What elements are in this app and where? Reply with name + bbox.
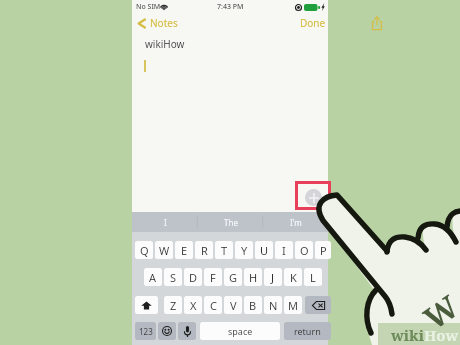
button[interactable]: Emoji xyxy=(158,322,176,340)
staticText: X xyxy=(190,298,197,313)
staticText: M xyxy=(288,298,298,313)
button[interactable]: J xyxy=(264,268,282,286)
button[interactable]: K xyxy=(284,268,302,286)
staticText: I xyxy=(164,217,167,228)
button[interactable]: R xyxy=(195,241,213,259)
button[interactable]: F xyxy=(204,268,222,286)
button[interactable]: N xyxy=(264,296,282,314)
staticText: V xyxy=(230,298,237,313)
staticText: N xyxy=(269,298,278,313)
button[interactable]: E xyxy=(175,241,193,259)
staticText: return xyxy=(294,325,321,337)
staticText: wikiHow xyxy=(145,37,185,51)
button[interactable]: I xyxy=(132,212,198,232)
button[interactable]: I xyxy=(275,241,293,259)
button[interactable]: Add attachment xyxy=(295,181,331,210)
staticText: The xyxy=(224,217,238,228)
staticText: 123 xyxy=(139,326,153,337)
button[interactable]: Dictate xyxy=(178,322,196,340)
staticText: Q xyxy=(140,243,149,258)
staticText: Notes xyxy=(150,16,178,30)
button[interactable]: C xyxy=(204,296,222,314)
button[interactable]: I'm xyxy=(263,212,328,232)
button[interactable]: Notes xyxy=(137,13,333,33)
button[interactable]: G xyxy=(224,268,242,286)
staticText: No SIM xyxy=(136,2,161,12)
button[interactable]: return xyxy=(284,322,331,340)
button[interactable]: D xyxy=(184,268,202,286)
button[interactable]: P xyxy=(315,241,331,259)
staticText: Y xyxy=(241,243,248,258)
button[interactable]: L xyxy=(304,268,322,286)
button[interactable]: space xyxy=(200,322,280,340)
staticText: W xyxy=(159,243,170,258)
button[interactable]: X xyxy=(184,296,202,314)
button[interactable]: O xyxy=(295,241,313,259)
button[interactable]: W xyxy=(155,241,173,259)
staticText: U xyxy=(260,243,269,258)
staticText: space xyxy=(228,325,253,337)
staticText: S xyxy=(170,270,177,285)
button[interactable]: Y xyxy=(235,241,253,259)
staticText: K xyxy=(290,270,297,285)
staticText: D xyxy=(189,270,198,285)
staticText: Z xyxy=(170,298,177,313)
button[interactable]: 123 xyxy=(135,322,156,340)
button[interactable]: M xyxy=(284,296,302,314)
button[interactable]: V xyxy=(224,296,242,314)
staticText: O xyxy=(300,243,309,258)
staticText: H xyxy=(249,270,258,285)
staticText: T xyxy=(221,243,228,258)
button[interactable]: Z xyxy=(164,296,182,314)
button[interactable]: S xyxy=(164,268,182,286)
staticText: J xyxy=(271,270,275,285)
button[interactable]: Shift xyxy=(135,296,158,314)
button[interactable]: H xyxy=(244,268,262,286)
button[interactable]: T xyxy=(215,241,233,259)
staticText: B xyxy=(249,298,257,313)
button[interactable]: Add xyxy=(305,189,322,206)
button[interactable]: Share xyxy=(279,13,460,33)
staticText: F xyxy=(210,270,216,285)
button[interactable]: Q xyxy=(135,241,153,259)
staticText: Done xyxy=(300,16,326,30)
button[interactable]: A xyxy=(144,268,162,286)
staticText: I xyxy=(282,243,286,258)
button[interactable]: Backspace xyxy=(305,296,331,314)
staticText: A xyxy=(149,270,157,285)
button[interactable]: The xyxy=(198,212,263,232)
staticText: P xyxy=(320,243,327,258)
staticText: L xyxy=(310,270,316,285)
staticText: W xyxy=(415,285,460,335)
staticText: wiki xyxy=(391,325,424,345)
staticText: E xyxy=(181,243,188,258)
staticText: C xyxy=(210,298,217,313)
button[interactable]: U xyxy=(255,241,273,259)
staticText: R xyxy=(201,243,208,258)
staticText: 7:43 PM xyxy=(217,2,244,12)
button[interactable]: Done xyxy=(300,13,460,33)
staticText: G xyxy=(229,270,238,285)
staticText: How xyxy=(424,325,459,345)
button[interactable]: B xyxy=(244,296,262,314)
staticText: I'm xyxy=(290,217,302,228)
